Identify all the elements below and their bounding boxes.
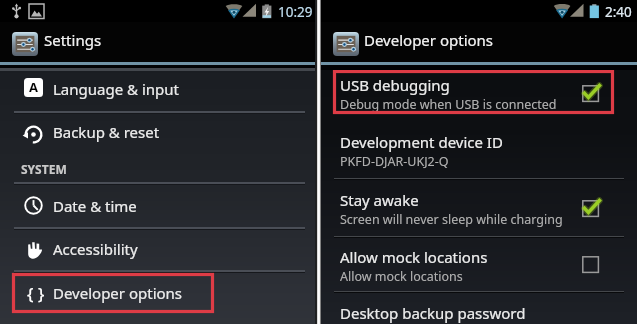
staticText: Backup & reset — [53, 122, 160, 142]
button[interactable]: Settings — [0, 22, 315, 62]
staticText: Language & input — [53, 79, 179, 99]
staticText: Allow mock locations — [340, 247, 488, 267]
staticText: USB debugging — [340, 75, 450, 95]
staticText: 10:29 — [278, 3, 313, 21]
staticText: Allow mock locations — [340, 268, 463, 285]
staticText: 2:40 — [605, 3, 632, 21]
button[interactable]: Accessibility — [0, 228, 315, 270]
staticText: Developer options — [53, 283, 183, 303]
staticText: Debug mode when USB is connected — [340, 96, 557, 113]
staticText: Desktop backup password — [340, 303, 526, 323]
staticText: Date & time — [53, 196, 137, 216]
staticText: Settings — [44, 30, 102, 50]
button[interactable]: Allow mock locations — [321, 237, 637, 291]
staticText: SYSTEM — [21, 161, 67, 177]
button[interactable]: Stay awake — [321, 179, 637, 236]
button[interactable]: A — [0, 64, 315, 110]
button[interactable]: Disabled — [582, 256, 600, 274]
staticText: Development device ID — [340, 132, 503, 152]
staticText: Accessibility — [53, 239, 138, 259]
button[interactable]: Backup & reset — [0, 111, 315, 157]
button[interactable]: Date & time — [0, 184, 315, 227]
button[interactable]: Development device ID — [321, 115, 637, 178]
button[interactable]: Enabled — [582, 200, 600, 218]
staticText: Developer options — [364, 30, 494, 50]
staticText: A — [29, 78, 38, 96]
staticText: PKFD-DJAR-UKJ2-Q — [340, 153, 449, 170]
staticText: { } — [27, 282, 45, 305]
button[interactable]: Developer options — [321, 22, 637, 62]
staticText: Stay awake — [340, 190, 419, 210]
button[interactable]: Enabled — [582, 85, 600, 103]
button[interactable]: { } — [0, 271, 315, 314]
button[interactable]: USB debugging — [321, 64, 637, 114]
staticText: Screen will never sleep while charging — [340, 211, 563, 228]
